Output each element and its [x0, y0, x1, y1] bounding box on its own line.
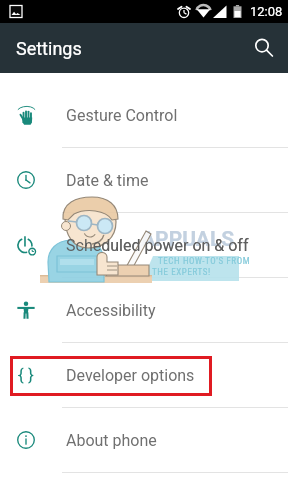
staticText: TECH HOW-TO'S FROM [158, 256, 251, 267]
staticText: Gesture Control [66, 106, 178, 125]
button[interactable]: Search [240, 24, 288, 72]
button[interactable]: Accessibility [0, 278, 288, 342]
staticText: About phone [66, 431, 157, 450]
button[interactable]: Date & time [0, 148, 288, 212]
button[interactable]: Gesture Control [0, 83, 288, 147]
staticText: THE EXPERTS! [152, 267, 211, 278]
staticText: Scheduled power on & off [66, 236, 249, 255]
staticText: 12:08 [250, 4, 283, 19]
staticText: Accessibility [66, 301, 156, 320]
staticText: { } [18, 365, 34, 385]
staticText: Developer options [66, 366, 195, 385]
staticText: Scheduled power on & off [66, 236, 249, 255]
staticText: Settings [16, 38, 82, 59]
button[interactable]: About phone [0, 408, 288, 472]
button[interactable]: Scheduled power on & off [0, 213, 288, 277]
staticText: APPUALS [141, 227, 235, 252]
staticText: Date & time [66, 171, 149, 190]
button[interactable]: { } [0, 343, 288, 407]
